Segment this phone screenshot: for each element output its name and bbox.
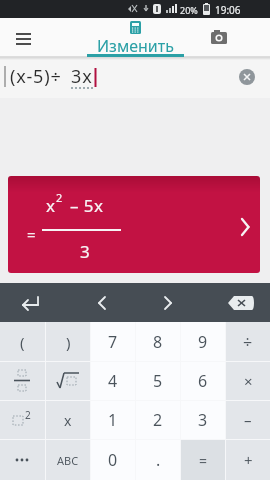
button[interactable] (8, 40, 38, 70)
button[interactable]: 1 (91, 401, 135, 439)
staticText: 3x (71, 64, 93, 89)
staticText: ) (66, 332, 71, 352)
button[interactable]: Изменить (87, 35, 184, 56)
button[interactable]: ÷ (226, 322, 270, 361)
staticText: x (64, 411, 72, 430)
staticText: × (244, 371, 253, 391)
staticText: 4 (108, 370, 118, 392)
button[interactable]: ( (0, 322, 45, 361)
staticText: x (46, 194, 55, 217)
staticText: Изменить (97, 35, 174, 56)
staticText: ( (20, 332, 25, 352)
button[interactable]: 8 (136, 322, 180, 361)
staticText: 2 (25, 408, 31, 422)
button[interactable]: 6 (181, 362, 225, 400)
staticText: ÷ (243, 331, 253, 353)
staticText: 2 (153, 409, 163, 431)
button[interactable]: + (226, 440, 270, 480)
staticText: 6 (198, 370, 208, 392)
staticText: + (244, 450, 253, 470)
staticText: 9 (198, 331, 208, 353)
staticText: 8 (153, 331, 163, 353)
button[interactable]: 0 (91, 440, 135, 480)
button[interactable] (0, 283, 67, 322)
button[interactable]: 4 (91, 362, 135, 400)
button[interactable]: 3 (181, 401, 225, 439)
button[interactable] (0, 362, 45, 400)
button[interactable]: = (8, 176, 260, 273)
button[interactable]: – (226, 401, 270, 439)
staticText: 5 (153, 370, 163, 392)
staticText: 2 (56, 190, 63, 205)
staticText: 7 (108, 331, 118, 353)
button[interactable] (67, 283, 134, 322)
button[interactable]: = (181, 440, 225, 480)
staticText: 3 (80, 240, 90, 263)
button[interactable] (134, 283, 201, 322)
staticText: = (199, 451, 208, 470)
staticText: (x-5)÷ (10, 64, 62, 89)
button[interactable]: 5 (136, 362, 180, 400)
staticText: . (156, 449, 161, 471)
button[interactable] (239, 69, 255, 85)
staticText: 3 (198, 409, 208, 431)
button[interactable]: 9 (181, 322, 225, 361)
button[interactable]: 2 (136, 401, 180, 439)
button[interactable] (0, 401, 45, 439)
button[interactable] (201, 283, 268, 322)
staticText: = (27, 224, 36, 244)
staticText: – (244, 410, 252, 430)
button[interactable]: × (226, 362, 270, 400)
staticText: 19:06 (215, 3, 241, 17)
staticText: – 5x (65, 194, 104, 217)
button[interactable]: 7 (91, 322, 135, 361)
staticText: 20% (180, 4, 198, 16)
staticText: ABC (57, 453, 79, 468)
button[interactable] (206, 24, 232, 50)
button[interactable]: ) (46, 322, 90, 361)
button[interactable] (46, 362, 90, 400)
button[interactable]: ABC (46, 440, 90, 480)
button[interactable]: x (46, 401, 90, 439)
staticText: 0 (108, 449, 118, 471)
button[interactable] (0, 440, 45, 480)
button[interactable]: . (136, 440, 180, 480)
staticText: 1 (108, 409, 118, 431)
